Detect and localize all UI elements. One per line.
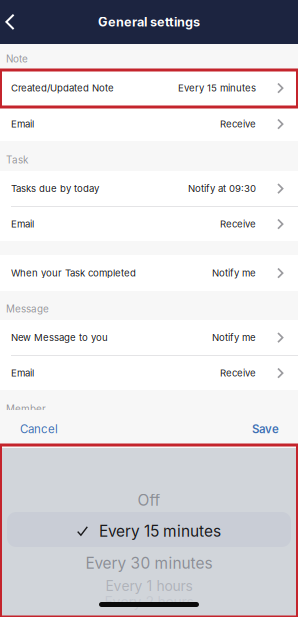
staticText: Notify me	[212, 267, 256, 279]
staticText: New Message to you	[11, 332, 108, 343]
staticText: Notify at 09:30	[188, 183, 256, 194]
staticText: Created/Updated Note	[11, 82, 114, 94]
button[interactable]: When your Task completed	[0, 255, 298, 291]
staticText: General settings	[98, 14, 200, 30]
staticText: Every 15 minutes	[99, 522, 221, 540]
staticText: Email	[11, 367, 34, 379]
staticText: Every 2 hours	[104, 594, 193, 610]
staticText: Receive	[220, 367, 256, 379]
staticText: Save	[252, 422, 279, 436]
staticText: Receive	[220, 218, 256, 230]
button[interactable]: Cancel	[0, 410, 70, 448]
button[interactable]: Email	[0, 356, 298, 390]
staticText: Email	[11, 118, 34, 130]
staticText: Task	[6, 154, 28, 166]
button[interactable]: Created/Updated Note	[0, 70, 298, 106]
staticText: Notify me	[212, 432, 256, 443]
button[interactable]: Save	[240, 410, 298, 448]
button[interactable]: New Message to you	[0, 320, 298, 355]
staticText: Push	[11, 432, 34, 443]
staticText: Tasks due by today	[11, 183, 99, 194]
button[interactable]: Push	[0, 420, 298, 455]
staticText: Note	[6, 53, 28, 65]
staticText: When your Task completed	[11, 267, 136, 279]
staticText: Every 15 minutes	[178, 82, 256, 94]
button[interactable]: Email	[0, 207, 298, 241]
staticText: Off	[137, 491, 160, 509]
button[interactable]: Email	[0, 107, 298, 141]
button[interactable]: Tasks due by today	[0, 171, 298, 206]
staticText: Receive	[220, 118, 256, 130]
staticText: Every 1 hours	[105, 578, 192, 594]
staticText: Cancel	[20, 422, 58, 436]
staticText: Member	[6, 403, 46, 415]
staticText: Email	[11, 218, 34, 230]
staticText: Message	[6, 303, 49, 315]
staticText: Notify me	[212, 332, 256, 343]
button[interactable]: Back	[0, 0, 34, 44]
staticText: Every 30 minutes	[85, 554, 212, 572]
